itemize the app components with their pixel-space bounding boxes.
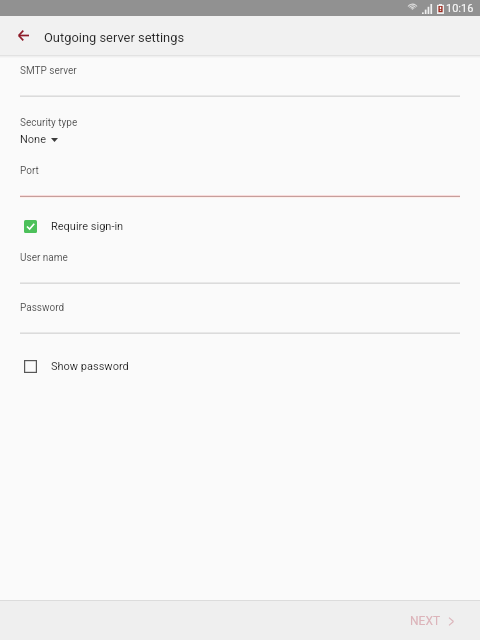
- staticText: NEXT: [410, 614, 441, 628]
- staticText: Security type: [20, 117, 78, 129]
- staticText: Password: [20, 302, 65, 314]
- button[interactable]: NEXT: [396, 605, 468, 637]
- button[interactable]: Show password: [16, 354, 141, 379]
- button[interactable]: Require sign-in: [16, 214, 136, 239]
- staticText: User name: [20, 252, 68, 264]
- staticText: SMTP server: [20, 65, 77, 77]
- staticText: Port: [20, 165, 39, 177]
- button[interactable]: Back: [3, 16, 43, 55]
- staticText: Show password: [51, 360, 129, 373]
- staticText: Require sign-in: [51, 220, 124, 233]
- staticText: 10:16: [446, 2, 474, 15]
- staticText: Outgoing server settings: [44, 30, 185, 45]
- staticText: None: [20, 133, 47, 146]
- button[interactable]: None: [14, 130, 68, 149]
